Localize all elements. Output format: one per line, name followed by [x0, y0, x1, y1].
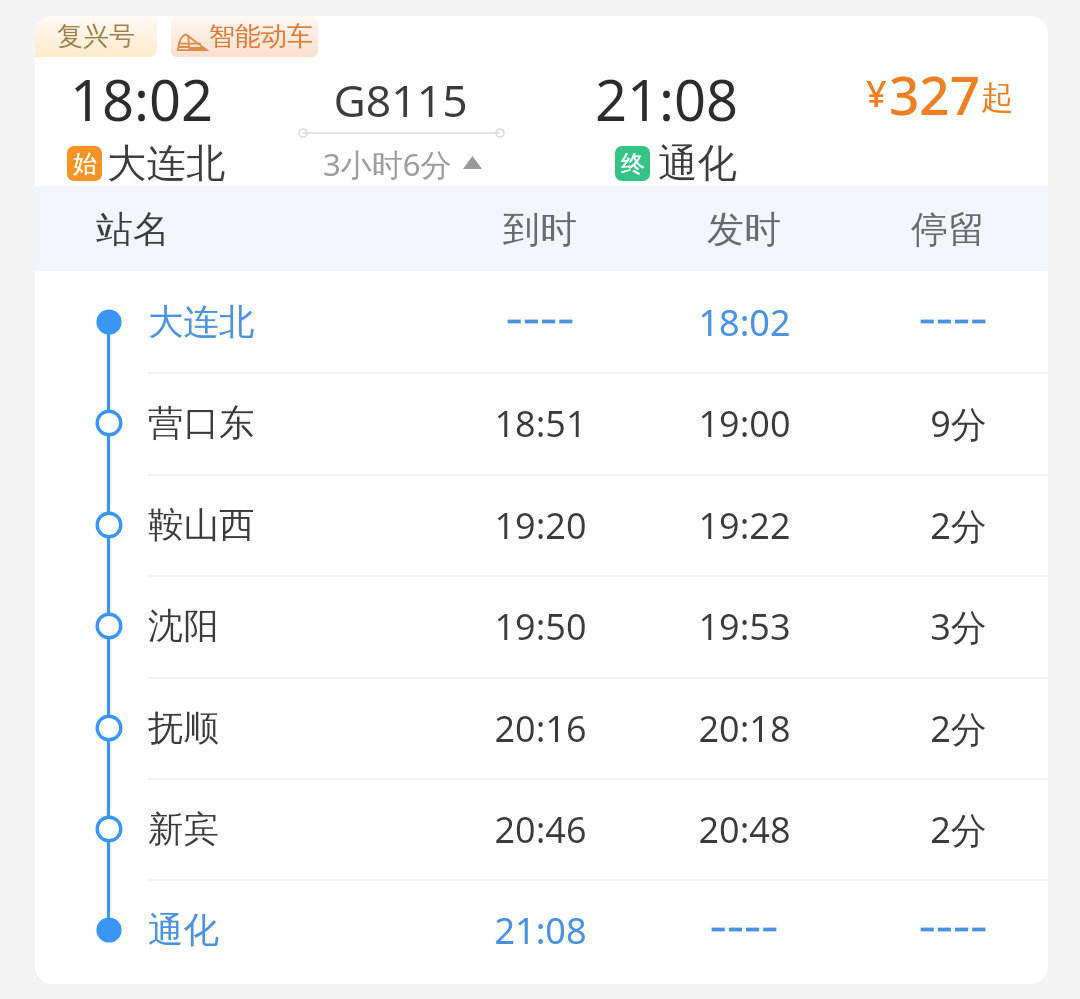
button[interactable]: 沈阳 [35, 575, 1048, 676]
staticText: 2分 [930, 805, 987, 854]
button[interactable]: 大连北 [35, 271, 1048, 372]
staticText: G8115 [333, 69, 468, 130]
button[interactable]: 鞍山西 [35, 474, 1048, 575]
staticText: 9分 [930, 399, 987, 448]
staticText: 抚顺 [148, 706, 219, 751]
staticText: 通化 [658, 139, 737, 189]
staticText: 18:02 [70, 61, 214, 137]
button[interactable]: G8115 大连北 18:02 到 通化 21:08，￥327起 [35, 57, 1048, 186]
staticText: 19:20 [494, 501, 587, 550]
staticText: 站名 [96, 206, 170, 253]
staticText: 通化 [148, 908, 219, 953]
staticText: 2分 [930, 501, 987, 550]
staticText: ¥ [866, 69, 887, 118]
button[interactable]: 新宾 [35, 778, 1048, 879]
staticText: 停留 [911, 206, 985, 253]
staticText: 沈阳 [148, 604, 219, 649]
staticText: 营口东 [148, 401, 255, 446]
button[interactable]: 复兴号 [35, 16, 157, 57]
staticText: 19:53 [698, 602, 791, 651]
staticText: 327 [889, 58, 980, 120]
staticText: 始 [73, 149, 97, 179]
staticText: 18:51 [494, 399, 587, 448]
staticText: 21:08 [595, 61, 739, 137]
button[interactable]: 抚顺 [35, 677, 1048, 778]
staticText: 终 [621, 149, 645, 179]
button[interactable]: 营口东 [35, 372, 1048, 473]
staticText: 大连北 [148, 300, 255, 345]
staticText: 新宾 [148, 807, 219, 852]
button[interactable]: 通化 [35, 879, 1048, 980]
staticText: 20:46 [494, 805, 587, 854]
staticText: 20:48 [698, 805, 791, 854]
other: 智能动车 [177, 22, 207, 52]
button[interactable]: 智能动车 [171, 16, 318, 57]
staticText: 智能动车 [209, 20, 313, 53]
staticText: 18:02 [698, 298, 791, 347]
staticText: 20:18 [698, 704, 791, 753]
staticText: 19:00 [698, 399, 791, 448]
staticText: 19:22 [698, 501, 791, 550]
staticText: 3小时6分 [323, 143, 452, 181]
staticText: 大连北 [107, 139, 226, 189]
staticText: 19:50 [494, 602, 587, 651]
staticText: 3分 [930, 602, 987, 651]
button[interactable]: 收起经停站 [318, 143, 490, 181]
staticText: 起 [981, 77, 1014, 119]
staticText: 复兴号 [57, 20, 135, 53]
staticText: 到时 [503, 206, 577, 253]
staticText: 2分 [930, 704, 987, 753]
staticText: 20:16 [494, 704, 587, 753]
staticText: 21:08 [494, 906, 587, 955]
staticText: 鞍山西 [148, 503, 255, 548]
staticText: 发时 [707, 206, 781, 253]
